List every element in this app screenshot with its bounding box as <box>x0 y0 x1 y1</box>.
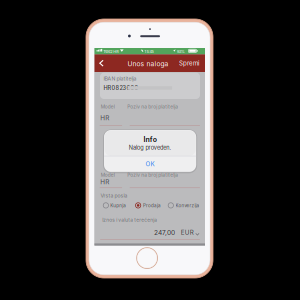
staticText: Spremi <box>179 59 199 67</box>
staticText: Poziv na broj platitelja <box>127 172 178 178</box>
staticText: HR <box>100 114 109 122</box>
staticText: Prodaja <box>143 203 161 208</box>
button[interactable]: OK <box>0 0 300 300</box>
staticText: Model <box>101 104 115 110</box>
staticText: Kupnja <box>110 203 126 208</box>
button[interactable]: Prodaja <box>0 0 300 300</box>
staticText: Konverzija <box>176 203 200 208</box>
staticText: OK <box>146 160 155 168</box>
staticText: Tele2 HR <box>103 49 118 54</box>
button[interactable]: Back <box>0 0 300 300</box>
button[interactable]: Spremi <box>0 0 300 300</box>
staticText: HR <box>100 178 109 186</box>
staticText: Poziv na broj platitelja <box>127 104 178 110</box>
button[interactable]: Konverzija <box>0 0 300 300</box>
staticText: 247,00 <box>154 229 175 236</box>
staticText: EUR <box>181 229 194 236</box>
staticText: Unos naloga <box>127 60 168 68</box>
staticText: Info <box>143 135 157 144</box>
staticText: HR0823600 <box>104 84 139 91</box>
staticText: IBAN platitelja <box>104 76 137 82</box>
button[interactable]: Kupnja <box>0 0 300 300</box>
staticText: 15:45 <box>144 49 153 54</box>
staticText: Model <box>101 172 115 178</box>
staticText: 93% <box>177 49 185 54</box>
staticText: Iznos i valuta terećenja <box>102 217 157 223</box>
staticText: Vrsta posla <box>101 193 128 199</box>
staticText: Nalog proveden. <box>129 144 171 151</box>
